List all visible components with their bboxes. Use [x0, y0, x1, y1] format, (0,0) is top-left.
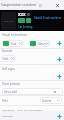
- staticText: Text: [11, 42, 17, 46]
- staticText: Voice prompt: [2, 82, 21, 86]
- staticText: Subgineration container: [1, 3, 37, 7]
- button[interactable]: Close: [53, 1, 61, 9]
- button[interactable]: Add sound: [55, 55, 63, 63]
- button[interactable]: Add self sign: [55, 73, 63, 80]
- staticText: Gorganize · 2019 E/D Disobedient: [2, 108, 43, 111]
- button[interactable]: Add visual instruction: [55, 39, 63, 47]
- staticText: Alarm: [38, 42, 46, 46]
- button[interactable]: Alarm: [29, 40, 50, 47]
- staticText: Granite: [42, 99, 52, 103]
- button[interactable]: Galloway: [2, 114, 13, 117]
- staticText: Stack Instruction: [34, 15, 61, 19]
- staticText: Self signs: [2, 67, 15, 71]
- button[interactable]: Move card: [1, 12, 16, 30]
- staticText: Galloway: [2, 114, 13, 117]
- staticText: Sounds: [2, 49, 13, 53]
- staticText: Soft: [3, 57, 9, 61]
- staticText: Title: [2, 99, 8, 103]
- button[interactable]: Soft: [2, 55, 15, 62]
- button[interactable]: Voice add: [2, 88, 63, 95]
- staticText: XXX: [18, 12, 26, 17]
- button[interactable]: Subgineration container: [1, 3, 42, 7]
- staticText: Car Sensing: [18, 25, 33, 29]
- button[interactable]: Text: [2, 40, 23, 47]
- staticText: Move card: [3, 20, 14, 23]
- staticText: Visual instructions: [2, 33, 27, 37]
- button[interactable]: Granite: [40, 97, 62, 104]
- staticText: Voice add: [4, 90, 17, 94]
- button[interactable]: Add: [55, 112, 63, 120]
